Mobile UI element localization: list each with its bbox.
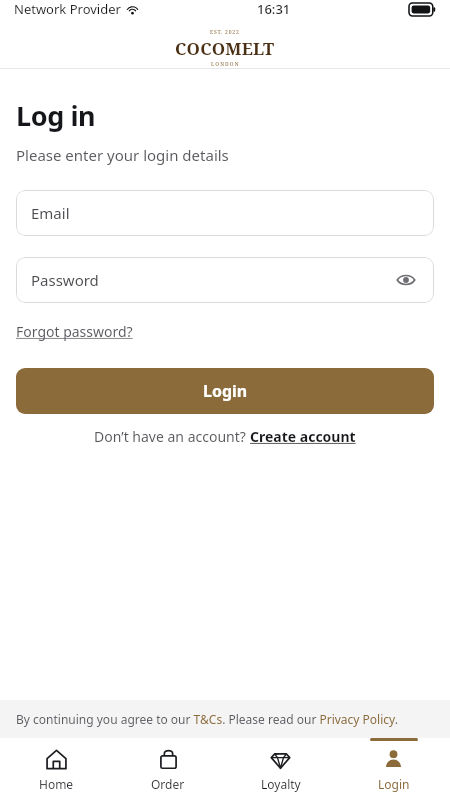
staticText: Network Provider [14, 0, 121, 18]
staticText: Login [203, 380, 248, 402]
staticText: Order [151, 776, 185, 792]
staticText: 16:31 [257, 0, 291, 18]
staticText: By continuing you agree to our T&Cs. Ple… [16, 711, 398, 727]
button[interactable]: Login [337, 738, 450, 800]
staticText: Login [378, 776, 410, 792]
staticText: LONDON [211, 61, 240, 68]
staticText: Create account [250, 427, 356, 446]
staticText: COCOMELT [175, 37, 275, 60]
button[interactable]: Forgot password? [16, 320, 133, 343]
staticText: Please enter your login details [16, 145, 229, 165]
staticText: EST. 2022 [210, 29, 240, 36]
staticText: Home [39, 776, 74, 792]
staticText: Password [31, 270, 99, 290]
button[interactable]: Login [16, 368, 434, 414]
button[interactable]: Password [16, 257, 434, 303]
staticText: Loyalty [261, 776, 301, 792]
button[interactable]: Show password [393, 267, 419, 293]
staticText: Email [31, 203, 70, 223]
button[interactable]: Email [16, 190, 434, 236]
staticText: Don’t have an account? [94, 427, 250, 446]
button[interactable]: Create account [250, 427, 356, 446]
staticText: Log in [16, 97, 96, 134]
staticText: Forgot password? [16, 322, 133, 341]
button[interactable]: Order [112, 738, 224, 800]
button[interactable]: Loyalty [224, 738, 337, 800]
button[interactable]: Home [0, 738, 112, 800]
